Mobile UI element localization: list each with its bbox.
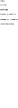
staticText: Apple ID, iCloud, Media bbox=[0, 23, 14, 25]
staticText: Sounds & Haptics bbox=[0, 13, 16, 15]
staticText: Settings bbox=[0, 0, 5, 2]
staticText: Settings bbox=[0, 8, 8, 11]
staticText: Sounds & Haptics bbox=[0, 17, 18, 21]
staticText: Settings bbox=[0, 4, 7, 6]
